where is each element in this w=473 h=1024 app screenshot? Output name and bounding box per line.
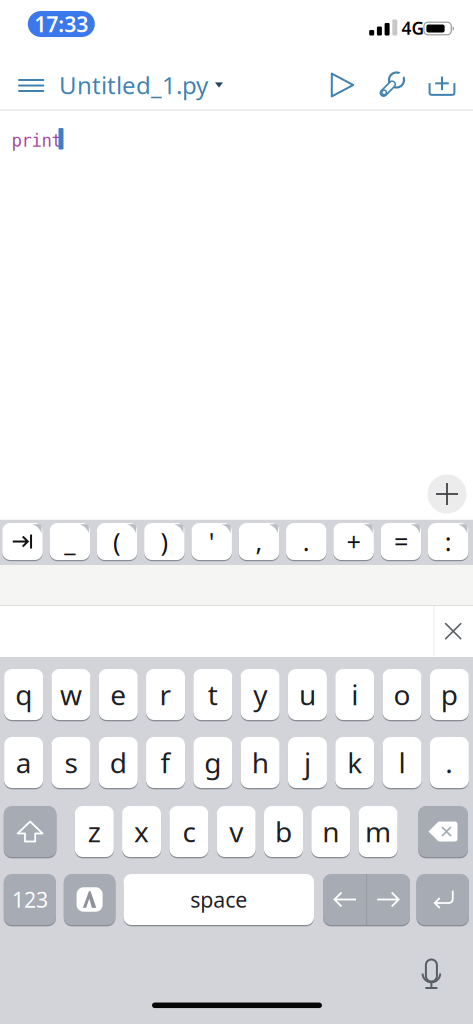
button[interactable]: w bbox=[51, 668, 90, 721]
staticText: ' bbox=[209, 525, 215, 558]
staticText: ( bbox=[113, 525, 121, 558]
staticText: c bbox=[182, 813, 195, 850]
button[interactable]: a bbox=[4, 736, 43, 789]
staticText: p bbox=[441, 676, 458, 713]
staticText: . bbox=[303, 525, 310, 558]
button[interactable]: k bbox=[335, 736, 374, 789]
staticText: h bbox=[252, 744, 269, 781]
button[interactable]: Menu bbox=[11, 65, 51, 105]
button[interactable]: Run bbox=[322, 63, 362, 107]
button[interactable]: m bbox=[359, 805, 398, 858]
staticText: . bbox=[445, 744, 453, 781]
staticText: q bbox=[15, 676, 32, 713]
staticText: w bbox=[60, 676, 82, 713]
button[interactable]: u bbox=[288, 668, 327, 721]
button[interactable]: x bbox=[122, 805, 161, 858]
staticText: Untitled_1.py bbox=[59, 69, 208, 101]
button[interactable]: l bbox=[382, 736, 421, 789]
staticText: j bbox=[304, 744, 311, 781]
button[interactable]: App key bbox=[64, 873, 115, 926]
button[interactable]: Shift bbox=[4, 805, 56, 858]
button[interactable]: e bbox=[99, 668, 138, 721]
staticText: 123 bbox=[12, 885, 48, 914]
staticText: ) bbox=[160, 525, 168, 558]
button[interactable]: q bbox=[4, 668, 43, 721]
button[interactable]: + bbox=[333, 522, 374, 561]
staticText: u bbox=[299, 676, 316, 713]
button[interactable]: Untitled_1.py bbox=[59, 63, 223, 107]
button[interactable]: ' bbox=[191, 522, 232, 561]
staticText: 17:33 bbox=[34, 10, 88, 38]
staticText: b bbox=[275, 813, 292, 850]
staticText: : bbox=[445, 525, 452, 558]
button[interactable]: Dictate bbox=[416, 959, 446, 989]
button[interactable]: ( bbox=[97, 522, 137, 561]
button[interactable]: i bbox=[335, 668, 374, 721]
staticText: s bbox=[64, 744, 77, 781]
button[interactable]: g bbox=[193, 736, 232, 789]
button[interactable]: c bbox=[169, 805, 208, 858]
staticText: g bbox=[204, 744, 221, 781]
staticText: 4G bbox=[401, 16, 424, 39]
staticText: v bbox=[229, 813, 243, 850]
button[interactable]: o bbox=[382, 668, 421, 721]
button[interactable]: t bbox=[193, 668, 232, 721]
button[interactable]: New file bbox=[422, 62, 462, 106]
staticText: = bbox=[394, 525, 408, 558]
button[interactable]: space bbox=[123, 873, 314, 926]
button[interactable]: d bbox=[99, 736, 138, 789]
button[interactable]: y bbox=[241, 668, 280, 721]
button[interactable]: j bbox=[288, 736, 327, 789]
button[interactable]: n bbox=[311, 805, 350, 858]
staticText: f bbox=[160, 744, 170, 781]
staticText: space bbox=[190, 885, 247, 914]
staticText: k bbox=[347, 744, 362, 781]
staticText: _ bbox=[64, 525, 75, 558]
staticText: m bbox=[365, 813, 391, 850]
button[interactable]: Move right bbox=[367, 874, 410, 925]
button[interactable]: v bbox=[217, 805, 256, 858]
button[interactable]: _ bbox=[49, 522, 90, 561]
button[interactable]: . bbox=[286, 522, 326, 561]
staticText: x bbox=[134, 813, 149, 850]
staticText: z bbox=[88, 813, 101, 850]
button[interactable]: ) bbox=[144, 522, 185, 561]
button[interactable]: z bbox=[75, 805, 114, 858]
button[interactable]: Return bbox=[416, 873, 469, 926]
button[interactable]: , bbox=[239, 522, 279, 561]
button[interactable]: Numbers bbox=[4, 873, 56, 926]
staticText: a bbox=[16, 744, 32, 781]
staticText: + bbox=[347, 525, 361, 558]
button[interactable]: s bbox=[51, 736, 90, 789]
staticText: print bbox=[11, 131, 61, 151]
button[interactable]: Delete bbox=[418, 805, 468, 858]
staticText: y bbox=[253, 676, 267, 713]
staticText: r bbox=[159, 676, 171, 713]
button[interactable]: f bbox=[146, 736, 185, 789]
button[interactable]: : bbox=[428, 522, 468, 561]
button[interactable]: Dismiss suggestions bbox=[434, 606, 472, 657]
staticText: e bbox=[110, 676, 126, 713]
staticText: i bbox=[351, 676, 358, 713]
button[interactable]: = bbox=[381, 522, 421, 561]
button[interactable]: Add bbox=[427, 474, 466, 513]
button[interactable]: r bbox=[146, 668, 185, 721]
button[interactable]: Move left bbox=[323, 874, 366, 925]
button[interactable]: 17:33 bbox=[28, 11, 95, 37]
button[interactable]: Tab bbox=[2, 522, 43, 561]
button[interactable]: h bbox=[241, 736, 280, 789]
staticText: o bbox=[393, 676, 410, 713]
button[interactable]: . bbox=[430, 736, 469, 789]
staticText: , bbox=[255, 525, 262, 558]
staticText: n bbox=[322, 813, 339, 850]
button[interactable]: b bbox=[264, 805, 303, 858]
button[interactable]: Tools bbox=[371, 63, 411, 107]
staticText: l bbox=[398, 744, 405, 781]
staticText: d bbox=[110, 744, 127, 781]
staticText: t bbox=[208, 676, 218, 713]
button[interactable]: p bbox=[430, 668, 469, 721]
